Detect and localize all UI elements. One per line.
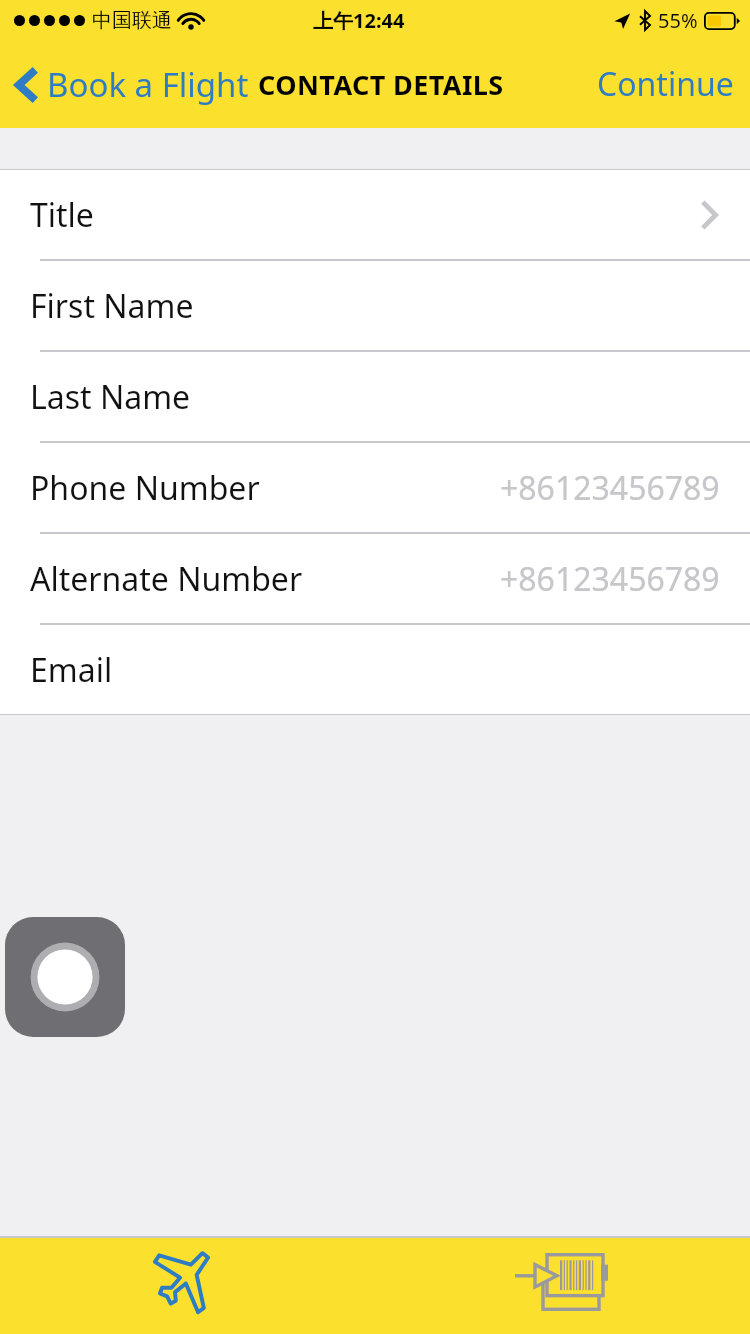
button[interactable]: Alternate Number: [0, 534, 750, 623]
staticText: Last Name: [30, 375, 191, 419]
staticText: First Name: [30, 284, 194, 328]
staticText: Alternate Number: [30, 557, 303, 601]
button[interactable]: Book a Flight: [0, 56, 257, 113]
button[interactable]: First Name: [0, 261, 750, 350]
button[interactable]: AssistiveTouch: [5, 917, 125, 1037]
staticText: Continue: [597, 62, 734, 106]
button[interactable]: Phone Number: [0, 443, 750, 532]
staticText: Phone Number: [30, 466, 260, 510]
staticText: 上午12:44: [313, 7, 405, 34]
staticText: 55%: [658, 7, 698, 34]
staticText: Email: [30, 648, 113, 692]
staticText: Title: [30, 193, 94, 237]
staticText: +86123456789: [500, 557, 720, 601]
staticText: 中国联通: [92, 8, 172, 33]
button[interactable]: Boarding pass: [375, 1238, 750, 1334]
button[interactable]: Title: [0, 170, 750, 259]
button[interactable]: Flights: [0, 1238, 375, 1334]
button[interactable]: Email: [0, 625, 750, 714]
button[interactable]: Continue: [581, 54, 750, 114]
button[interactable]: Last Name: [0, 352, 750, 441]
staticText: Book a Flight: [47, 62, 249, 107]
staticText: +86123456789: [500, 466, 720, 510]
staticText: CONTACT DETAILS: [258, 66, 504, 103]
